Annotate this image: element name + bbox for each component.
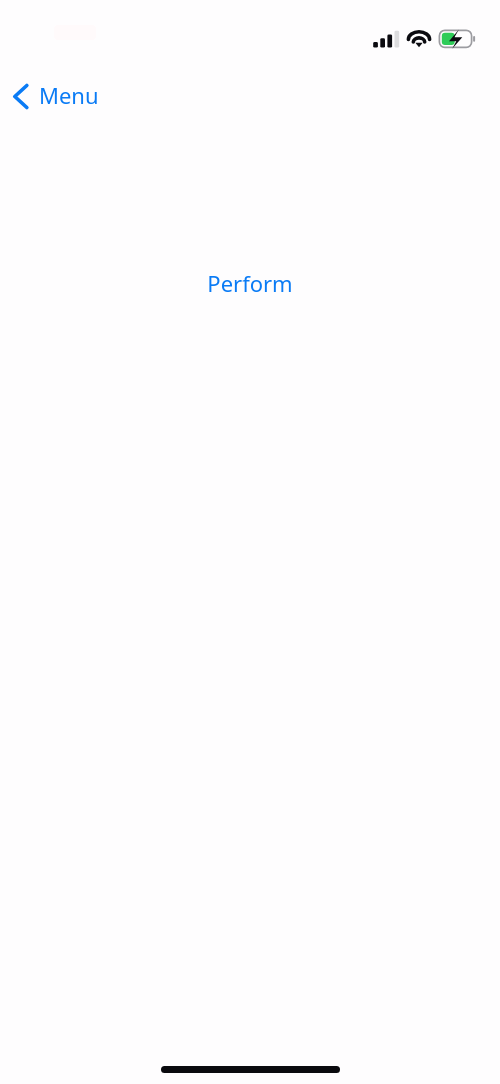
button[interactable]: Back to Menu	[4, 78, 101, 114]
staticText: Menu	[39, 80, 99, 110]
button[interactable]: Perform	[207, 268, 293, 298]
staticText: Perform	[207, 268, 293, 298]
